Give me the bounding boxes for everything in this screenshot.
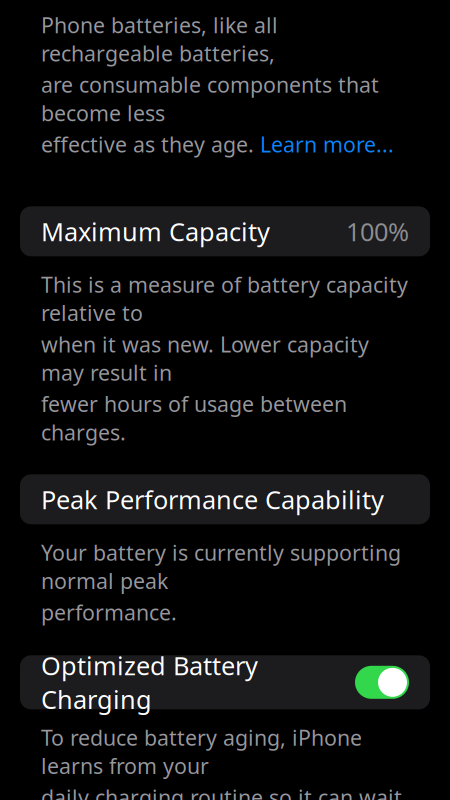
button[interactable]: Learn more... bbox=[260, 130, 394, 158]
staticText: Maximum Capacity bbox=[41, 214, 270, 248]
staticText: Your battery is currently supporting nor… bbox=[41, 538, 401, 595]
button[interactable]: Optimized Battery Charging bbox=[20, 655, 430, 709]
staticText: performance. bbox=[41, 598, 177, 626]
staticText: This is a measure of battery capacity re… bbox=[41, 270, 408, 327]
staticText: fewer hours of usage between charges. bbox=[41, 390, 347, 446]
staticText: 100% bbox=[346, 214, 409, 248]
staticText: effective as they age. bbox=[41, 130, 260, 158]
staticText: when it was new. Lower capacity may resu… bbox=[41, 330, 369, 387]
staticText: Peak Performance Capability bbox=[41, 482, 384, 516]
staticText: Learn more... bbox=[260, 130, 394, 158]
staticText: To reduce battery aging, iPhone learns f… bbox=[41, 723, 362, 780]
staticText: Phone batteries, like all rechargeable b… bbox=[41, 11, 278, 67]
staticText: Optimized Battery Charging bbox=[41, 649, 258, 716]
staticText: are consumable components that become le… bbox=[41, 70, 379, 127]
staticText: daily charging routine so it can wait to… bbox=[41, 783, 402, 800]
button[interactable]: Maximum Capacity bbox=[20, 206, 430, 256]
button[interactable]: Peak Performance Capability bbox=[20, 474, 430, 524]
